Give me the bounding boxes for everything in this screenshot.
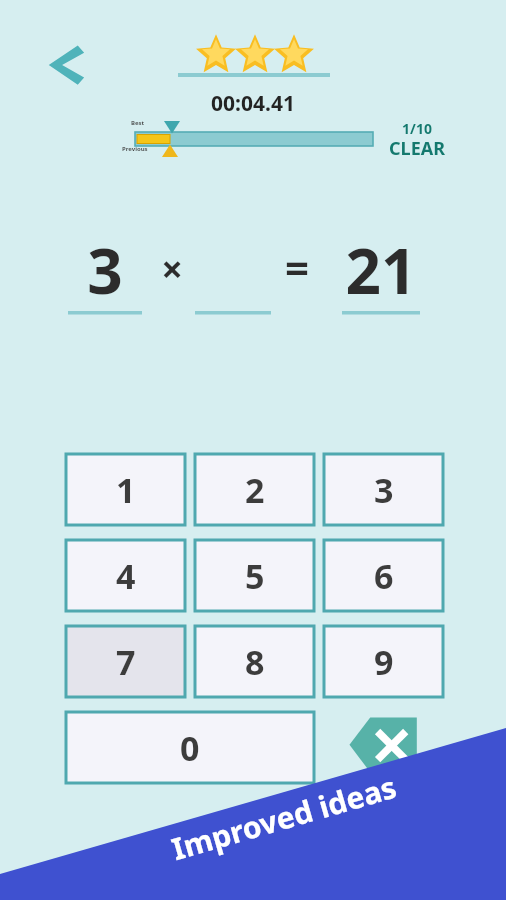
button[interactable]: 6 [324,540,443,611]
button[interactable]: 2 [195,454,314,525]
button[interactable]: 3 [324,454,443,525]
staticText: 00:04.41 [0,89,506,117]
staticText: 1 [116,467,136,513]
button[interactable]: 5 [195,540,314,611]
button[interactable]: Back [36,36,94,92]
staticText: × [146,242,198,302]
staticText: CLEAR [372,136,462,160]
staticText: Improved ideas [167,766,401,869]
button[interactable]: Backspace [348,711,422,783]
staticText: 7 [116,639,136,685]
staticText: 3 [374,467,394,513]
staticText: 4 [116,553,136,599]
staticText: 1/10 [378,119,456,138]
staticText: 9 [374,639,394,685]
button[interactable]: 7 [66,626,185,697]
button[interactable]: 8 [195,626,314,697]
button[interactable]: 4 [66,540,185,611]
staticText: 3 [66,228,144,304]
staticText: 0 [180,725,200,771]
staticText: 5 [245,553,265,599]
staticText: Previous [122,145,148,153]
button[interactable]: 0 [66,712,314,783]
staticText: = [270,238,324,300]
staticText: 8 [245,639,265,685]
staticText: Best [131,119,145,127]
button[interactable]: 9 [324,626,443,697]
staticText: 21 [336,228,426,304]
button[interactable]: 1 [66,454,185,525]
staticText: 6 [374,553,394,599]
staticText: 2 [245,467,265,513]
